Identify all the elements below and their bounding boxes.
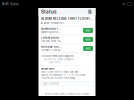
staticText: Status xyxy=(41,9,56,14)
staticText: Download release for macOS xyxy=(41,27,62,30)
button[interactable]: Share xyxy=(88,9,92,14)
staticText: Supporting arm64 + x86 xyxy=(41,31,62,33)
button[interactable]: Leave a comment xyxy=(41,81,93,86)
staticText: 9:41 xyxy=(2,2,8,6)
staticText: Release notes and changelog xyxy=(41,45,62,48)
staticText: Get xyxy=(86,47,91,50)
staticText: Get xyxy=(86,29,91,32)
staticText: Learn more xyxy=(49,61,60,64)
staticText: Terms Privacy Security Status Docs Conta… xyxy=(44,93,89,95)
staticText: author released this xyxy=(43,22,63,24)
staticText: Latest build xyxy=(41,36,59,39)
staticText: Updated the dependency to 1.2 for the mo… xyxy=(41,74,85,76)
staticText: Leave a comment xyxy=(42,82,59,85)
staticText: ALBUM RELEASE FIRST FLOTATION xyxy=(41,17,93,21)
staticText: Get xyxy=(86,38,91,41)
staticText: Improved performance when loading xyxy=(41,77,75,79)
staticText: Fixed a crash where a release build fail… xyxy=(41,71,78,73)
staticText: Safari xyxy=(8,2,19,6)
staticText: See why we require a signature xyxy=(44,58,74,61)
staticText: Optional Steps Instance Stage xyxy=(41,40,62,42)
button[interactable]: Get xyxy=(83,28,93,33)
staticText: Release notes xyxy=(41,67,54,70)
staticText: Includes 5 fixes and 2 features xyxy=(41,49,62,51)
staticText: Software needs code signatures xyxy=(41,55,73,58)
button[interactable]: Get xyxy=(83,46,93,51)
button[interactable]: Get xyxy=(83,37,93,42)
